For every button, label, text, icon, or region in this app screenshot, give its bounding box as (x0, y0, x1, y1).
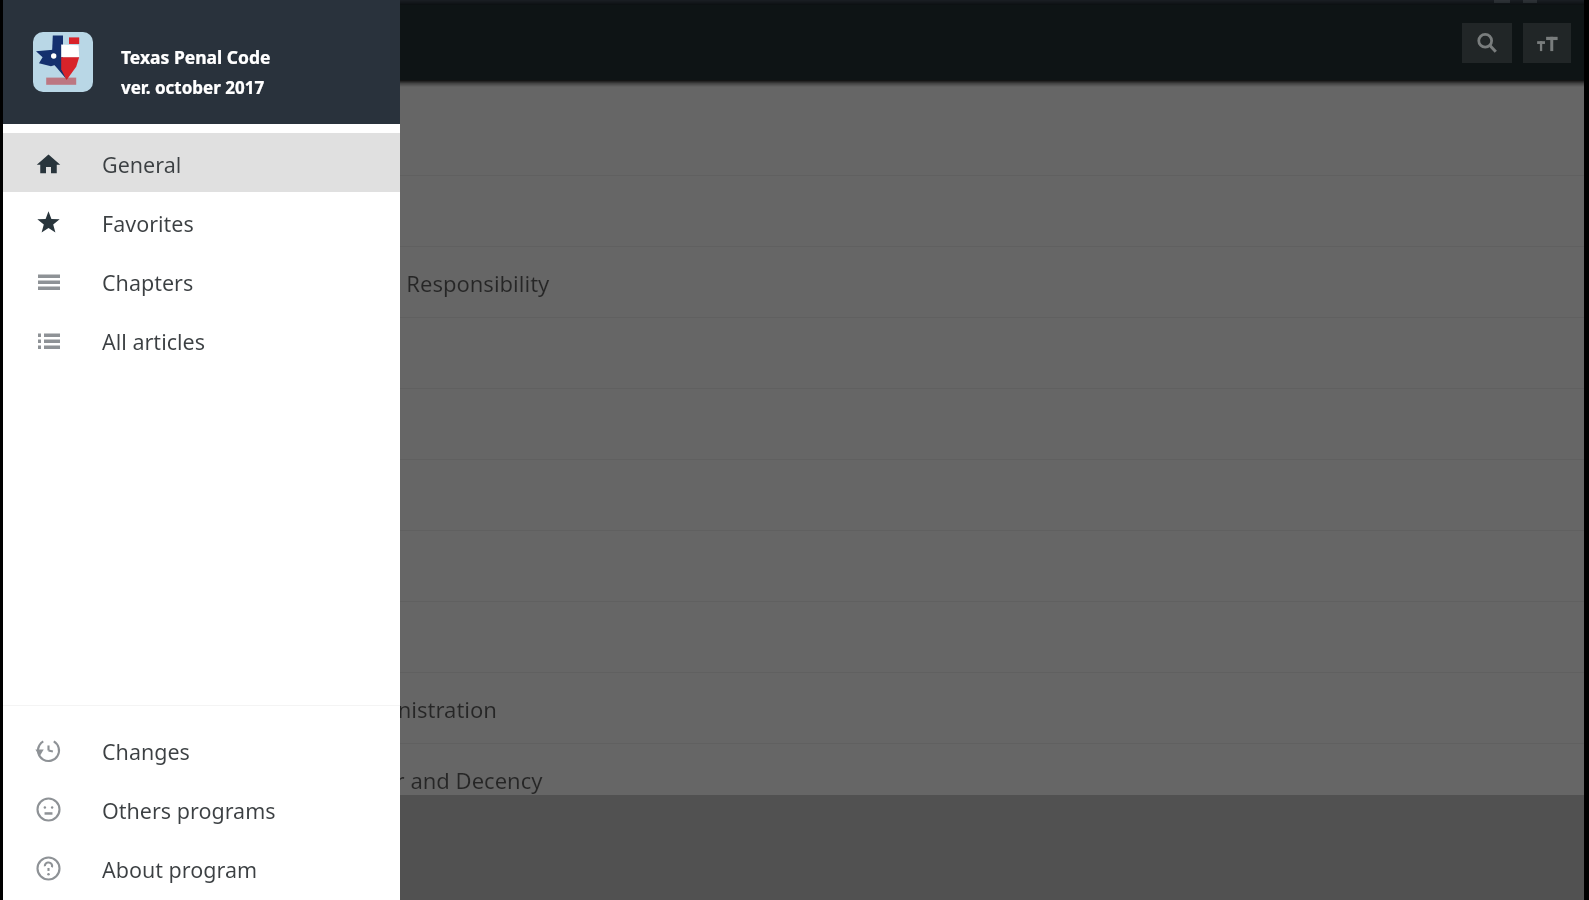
button[interactable]: Others programs (0, 779, 400, 838)
button[interactable]: Preliminary provisions (0, 105, 1589, 176)
button[interactable]: Title 6. Offenses Against the Family (0, 531, 1589, 602)
staticText: Title 2. General Principles of Criminal … (21, 268, 550, 298)
button[interactable]: Title 9. Offenses Against Public Order a… (0, 744, 1589, 815)
staticText: Preliminary provisions (21, 126, 251, 156)
staticText: Title 9. Offenses Against Public Order a… (21, 765, 543, 795)
staticText: Title 10. Offenses Against Public Health… (21, 836, 627, 866)
staticText: Texas Penal Code (121, 45, 271, 69)
staticText: Others programs (102, 796, 276, 825)
button[interactable]: Title 10. Offenses Against Public Health… (0, 815, 1589, 886)
button[interactable]: Changes (0, 720, 400, 779)
staticText: All articles (102, 327, 205, 356)
staticText: About program (102, 855, 258, 884)
staticText: ver. october 2017 (121, 76, 265, 99)
button[interactable]: Title 7. Offenses Against Property (0, 602, 1589, 673)
staticText: Title 1. Introductory Provisions (21, 197, 337, 227)
button[interactable]: Texas Penal Code (0, 0, 400, 124)
button[interactable]: Chapters (0, 251, 400, 310)
staticText: General (102, 150, 182, 179)
button[interactable]: Title 8. Offenses Against Public Adminis… (0, 673, 1589, 744)
button[interactable]: Favorites (0, 192, 400, 251)
button[interactable]: Title 4. Inchoate Offenses (0, 389, 1589, 460)
button[interactable]: All articles (0, 310, 400, 369)
button[interactable]: About program (0, 838, 400, 897)
button[interactable]: Title 1. Introductory Provisions (0, 176, 1589, 247)
button[interactable]: Title 2. General Principles of Criminal … (0, 247, 1589, 318)
button[interactable]: Title 5. Offenses Against the Person (0, 460, 1589, 531)
button[interactable]: Search (1462, 23, 1512, 63)
staticText: Title 8. Offenses Against Public Adminis… (21, 694, 497, 724)
staticText: Chapters (102, 268, 194, 297)
staticText: Changes (102, 737, 190, 766)
button[interactable]: General (0, 133, 400, 192)
staticText: Favorites (102, 209, 194, 238)
staticText: Title 3. Punishments (21, 339, 231, 369)
button[interactable]: Title 3. Punishments (0, 318, 1589, 389)
button[interactable]: Text size (1523, 23, 1571, 63)
